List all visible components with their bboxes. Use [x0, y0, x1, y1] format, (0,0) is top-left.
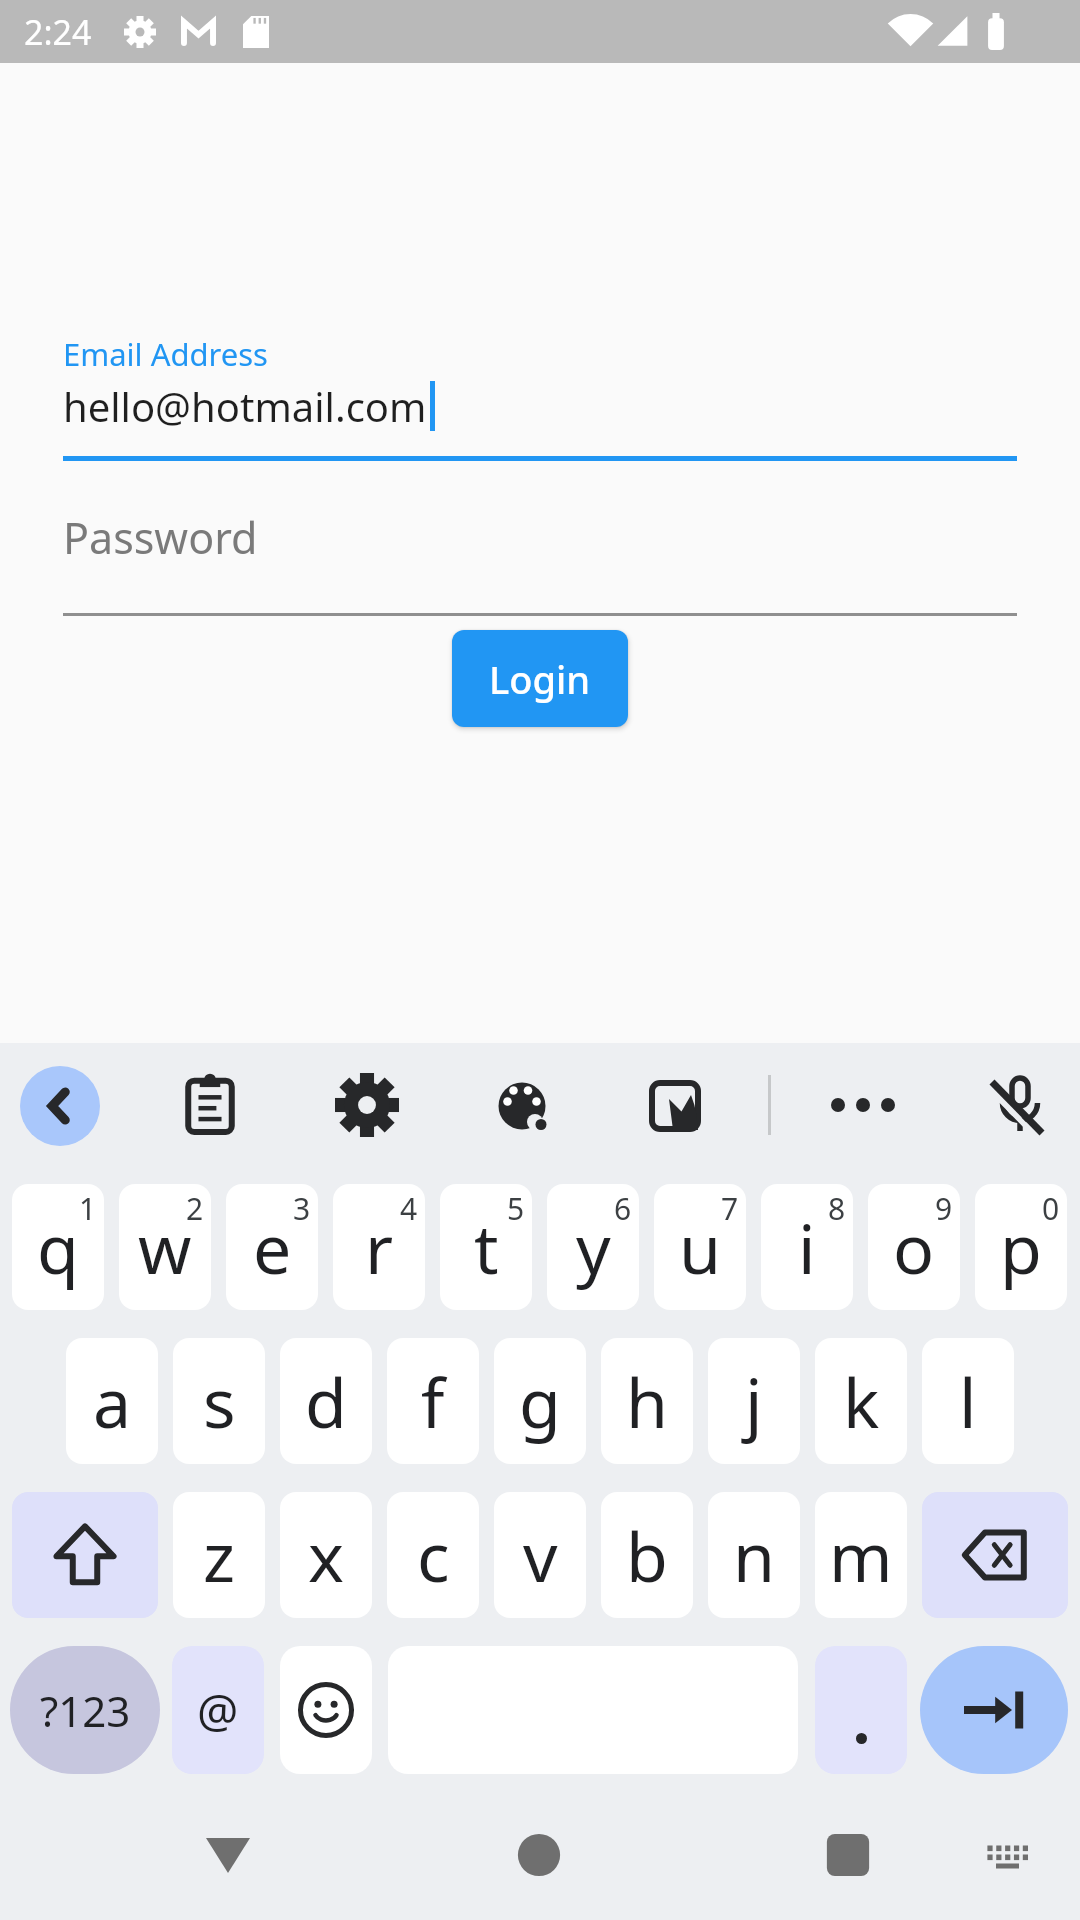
- button[interactable]: Login: [452, 630, 628, 727]
- staticText: 2: [186, 1188, 204, 1229]
- staticText: u: [679, 1201, 722, 1294]
- staticText: 3: [293, 1188, 311, 1229]
- button[interactable]: t: [440, 1184, 532, 1310]
- staticText: @: [197, 1679, 239, 1742]
- staticText: d: [305, 1355, 347, 1448]
- button[interactable]: g: [494, 1338, 586, 1464]
- button[interactable]: [922, 1492, 1068, 1618]
- staticText: Password: [63, 508, 258, 564]
- button[interactable]: p: [975, 1184, 1067, 1310]
- button[interactable]: [335, 1073, 399, 1137]
- button[interactable]: u: [654, 1184, 746, 1310]
- button[interactable]: [648, 1073, 712, 1137]
- staticText: f: [421, 1355, 445, 1448]
- staticText: e: [253, 1201, 292, 1294]
- staticText: Login: [489, 653, 591, 705]
- staticText: 7: [721, 1188, 739, 1229]
- staticText: h: [626, 1355, 669, 1448]
- button[interactable]: c: [387, 1492, 479, 1618]
- button[interactable]: @: [172, 1646, 264, 1774]
- button[interactable]: a: [66, 1338, 158, 1464]
- button[interactable]: j: [708, 1338, 800, 1464]
- staticText: ?123: [40, 1682, 131, 1739]
- staticText: t: [474, 1201, 499, 1294]
- button[interactable]: [831, 1073, 895, 1137]
- button[interactable]: w: [119, 1184, 211, 1310]
- staticText: l: [959, 1355, 977, 1448]
- staticText: 4: [400, 1188, 418, 1229]
- staticText: m: [829, 1509, 893, 1602]
- staticText: g: [519, 1355, 561, 1448]
- button[interactable]: q: [12, 1184, 104, 1310]
- button[interactable]: l: [922, 1338, 1014, 1464]
- button[interactable]: [988, 1073, 1052, 1137]
- staticText: r: [365, 1201, 394, 1294]
- button[interactable]: [920, 1646, 1068, 1774]
- staticText: x: [308, 1509, 344, 1602]
- staticText: 6: [614, 1188, 632, 1229]
- staticText: 5: [507, 1188, 525, 1229]
- staticText: b: [626, 1509, 668, 1602]
- button[interactable]: [985, 1836, 1031, 1880]
- staticText: p: [1000, 1201, 1042, 1294]
- staticText: w: [138, 1201, 192, 1294]
- button[interactable]: [178, 1073, 242, 1137]
- button[interactable]: [826, 1833, 870, 1877]
- button[interactable]: k: [815, 1338, 907, 1464]
- staticText: c: [417, 1509, 450, 1602]
- button[interactable]: e: [226, 1184, 318, 1310]
- button[interactable]: f: [387, 1338, 479, 1464]
- staticText: 1: [79, 1188, 97, 1229]
- button[interactable]: y: [547, 1184, 639, 1310]
- button[interactable]: i: [761, 1184, 853, 1310]
- staticText: v: [523, 1509, 558, 1602]
- staticText: z: [203, 1509, 235, 1602]
- button[interactable]: n: [708, 1492, 800, 1618]
- button[interactable]: d: [280, 1338, 372, 1464]
- staticText: j: [745, 1355, 763, 1448]
- button[interactable]: b: [601, 1492, 693, 1618]
- button[interactable]: s: [173, 1338, 265, 1464]
- button[interactable]: m: [815, 1492, 907, 1618]
- button[interactable]: [815, 1646, 907, 1774]
- button[interactable]: [280, 1646, 372, 1774]
- staticText: 8: [828, 1188, 846, 1229]
- button[interactable]: [517, 1833, 561, 1877]
- staticText: a: [93, 1355, 132, 1448]
- staticText: i: [798, 1201, 816, 1294]
- button[interactable]: o: [868, 1184, 960, 1310]
- button[interactable]: ?123: [10, 1646, 160, 1774]
- button[interactable]: [12, 1492, 158, 1618]
- button[interactable]: [492, 1073, 556, 1137]
- staticText: 9: [935, 1188, 953, 1229]
- staticText: 2:24: [24, 9, 92, 55]
- staticText: o: [893, 1201, 935, 1294]
- staticText: n: [733, 1509, 776, 1602]
- staticText: k: [843, 1355, 880, 1448]
- button[interactable]: v: [494, 1492, 586, 1618]
- button[interactable]: h: [601, 1338, 693, 1464]
- button[interactable]: [206, 1838, 250, 1873]
- staticText: Email Address: [63, 333, 268, 375]
- button[interactable]: r: [333, 1184, 425, 1310]
- staticText: q: [37, 1201, 79, 1294]
- staticText: s: [203, 1355, 236, 1448]
- button[interactable]: x: [280, 1492, 372, 1618]
- button[interactable]: [20, 1066, 100, 1146]
- staticText: hello@hotmail.com: [63, 379, 427, 433]
- button[interactable]: z: [173, 1492, 265, 1618]
- staticText: y: [576, 1201, 611, 1294]
- staticText: 0: [1042, 1188, 1060, 1229]
